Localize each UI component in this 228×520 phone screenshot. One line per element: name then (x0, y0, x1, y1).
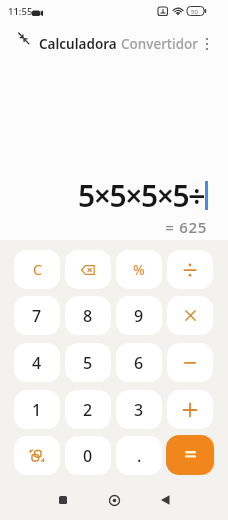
button[interactable]: 7 (14, 296, 60, 335)
button[interactable]: 4 (14, 343, 60, 382)
staticText: 2 (83, 399, 93, 421)
button[interactable] (199, 36, 215, 52)
button[interactable]: 2 (65, 390, 111, 429)
button[interactable] (94, 488, 134, 512)
button[interactable]: 3 (116, 390, 162, 429)
staticText: 4 (32, 352, 42, 374)
button[interactable]: Calculadora (39, 35, 117, 53)
button[interactable] (65, 250, 111, 289)
button[interactable] (166, 435, 214, 475)
staticText: . (137, 445, 142, 467)
button[interactable]: 8 (65, 296, 111, 335)
staticText: 5×5×5×5÷ (78, 175, 205, 216)
button[interactable] (14, 31, 32, 47)
staticText: 50 (191, 8, 198, 16)
staticText: 5 (83, 352, 93, 374)
staticText: 11:55 (8, 5, 33, 18)
staticText: 3 (134, 399, 144, 421)
staticText: 7 (32, 305, 42, 327)
staticText: 9 (134, 305, 144, 327)
staticText: 0 (83, 445, 93, 467)
staticText: C (33, 260, 42, 279)
button[interactable]: Convertidor (121, 35, 199, 53)
button[interactable]: 5 (65, 343, 111, 382)
button[interactable] (14, 436, 60, 475)
button[interactable] (167, 250, 213, 289)
button[interactable]: C (14, 250, 60, 289)
button[interactable]: % (116, 250, 162, 289)
button[interactable] (145, 488, 185, 512)
staticText: 6 (134, 352, 144, 374)
button[interactable]: 0 (65, 436, 111, 475)
button[interactable] (167, 390, 213, 429)
staticText: 1 (32, 399, 42, 421)
button[interactable]: . (116, 436, 162, 475)
button[interactable]: 9 (116, 296, 162, 335)
button[interactable]: 1 (14, 390, 60, 429)
staticText: 8 (83, 305, 93, 327)
button[interactable]: 6 (116, 343, 162, 382)
button[interactable] (43, 488, 83, 512)
staticText: = 625 (0, 217, 207, 237)
staticText: % (133, 260, 145, 279)
button[interactable] (167, 343, 213, 382)
button[interactable] (167, 296, 213, 335)
